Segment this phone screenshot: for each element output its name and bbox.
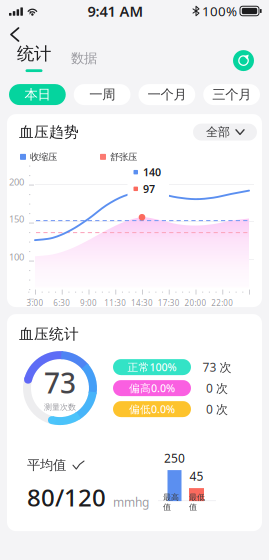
staticText: 收缩压	[30, 151, 57, 163]
staticText: 100	[9, 251, 24, 263]
staticText: 9:00	[80, 298, 97, 308]
staticText: 舒张压	[110, 151, 137, 163]
staticText: 9:41 AM	[87, 1, 143, 21]
staticText: 三个月	[212, 86, 251, 103]
staticText: 最低值	[189, 492, 205, 512]
staticText: 200	[9, 176, 24, 188]
staticText: 17:30	[158, 298, 180, 308]
staticText: 11:30	[104, 298, 126, 308]
staticText: 测量次数	[44, 402, 76, 412]
staticText: 3:00	[26, 298, 43, 308]
staticText: 100%	[202, 2, 237, 20]
staticText: 0 次	[206, 401, 228, 417]
staticText: 14:30	[131, 298, 153, 308]
staticText: 血压趋势	[19, 123, 79, 141]
button[interactable]: 数据	[71, 50, 97, 72]
staticText: 偏高0.0%	[129, 381, 175, 395]
button[interactable]: 统计	[17, 43, 51, 72]
staticText: 血压统计	[19, 325, 79, 343]
staticText: 73 次	[202, 359, 231, 375]
staticText: 平均值	[27, 457, 66, 473]
staticText: 150	[9, 213, 24, 225]
button[interactable]: 一周	[74, 84, 131, 105]
button[interactable]: 全部	[193, 124, 257, 141]
staticText: 一个月	[147, 86, 186, 103]
button[interactable]: Refresh	[233, 50, 254, 72]
staticText: 偏低0.0%	[129, 402, 175, 416]
staticText: 73	[44, 364, 76, 401]
staticText: 数据	[71, 50, 97, 67]
staticText: 统计	[17, 43, 51, 64]
staticText: 250	[164, 450, 185, 466]
staticText: 22:00	[211, 298, 233, 308]
staticText: mmhg	[113, 494, 149, 510]
button[interactable]: Back	[0, 22, 30, 42]
staticText: 97	[143, 182, 155, 196]
staticText: 本日	[24, 86, 50, 103]
staticText: 一周	[89, 86, 115, 103]
button[interactable]: 一个月	[138, 84, 195, 105]
staticText: 20:00	[184, 298, 206, 308]
button[interactable]: 三个月	[203, 84, 260, 105]
button[interactable]: 本日	[9, 84, 66, 105]
staticText: 最高值	[163, 492, 179, 512]
staticText: 45	[189, 468, 203, 484]
staticText: 140	[143, 165, 161, 179]
staticText: 全部	[206, 125, 230, 139]
staticText: 0 次	[206, 380, 228, 396]
staticText: 正常100%	[127, 360, 176, 374]
staticText: 80/120	[27, 481, 106, 513]
staticText: 6:30	[53, 298, 70, 308]
